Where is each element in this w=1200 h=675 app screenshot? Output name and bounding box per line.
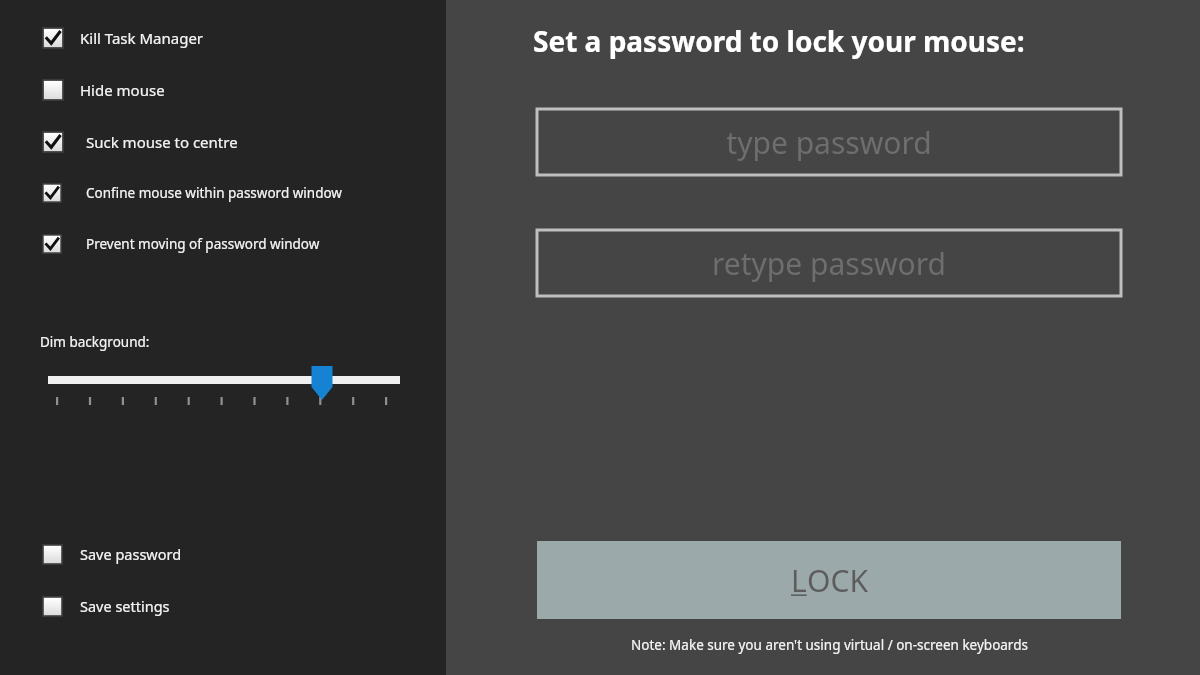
button[interactable]: Hide mouse [42, 78, 177, 102]
staticText: retype password [712, 243, 946, 284]
button[interactable]: Kill Task Manager [42, 26, 238, 50]
button[interactable]: type password [537, 109, 1121, 175]
staticText: type password [726, 122, 932, 163]
button[interactable]: Save settings [42, 594, 199, 618]
staticText: Kill Task Manager [80, 28, 204, 48]
button[interactable]: Save password [42, 542, 199, 566]
button[interactable]: Suck mouse to centre [42, 130, 270, 154]
button[interactable]: L [537, 541, 1121, 619]
staticText: L [791, 560, 807, 601]
staticText: OCK [807, 560, 868, 601]
staticText: Set a password to lock your mouse: [533, 22, 1025, 60]
staticText: Note: Make sure you aren't using virtual… [631, 636, 1028, 654]
staticText: Dim background: [40, 333, 150, 351]
button[interactable]: Prevent moving of password window [42, 233, 354, 255]
staticText: Save settings [80, 596, 170, 616]
staticText: Suck mouse to centre [86, 132, 238, 152]
button[interactable]: Dim background level [40, 364, 412, 412]
staticText: Prevent moving of password window [86, 235, 320, 253]
staticText: Save password [80, 544, 182, 564]
button[interactable]: retype password [537, 230, 1121, 296]
staticText: Hide mouse [80, 80, 165, 100]
staticText: Confine mouse within password window [86, 184, 342, 202]
button[interactable]: Confine mouse within password window [42, 182, 378, 204]
